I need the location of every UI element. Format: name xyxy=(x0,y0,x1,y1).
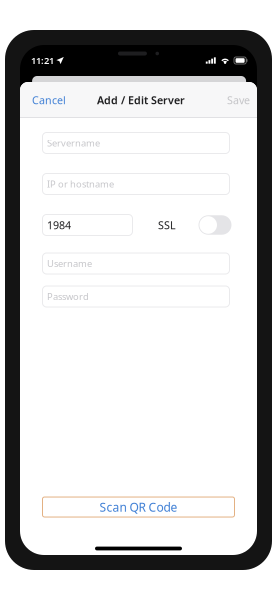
staticText: Save xyxy=(227,93,250,107)
staticText: Password xyxy=(47,290,89,303)
button[interactable]: Cancel xyxy=(20,82,78,118)
button[interactable]: SSL xyxy=(198,215,231,235)
staticText: Servername xyxy=(47,137,100,149)
staticText: Scan QR Code xyxy=(99,499,177,515)
staticText: 11:21 xyxy=(31,54,54,67)
button[interactable]: Save xyxy=(215,82,257,118)
staticText: 1984 xyxy=(47,218,71,232)
staticText: Cancel xyxy=(32,93,66,107)
staticText: SSL xyxy=(158,218,176,232)
staticText: IP or hostname xyxy=(47,178,114,190)
staticText: Username xyxy=(47,257,92,270)
staticText: Add / Edit Server xyxy=(97,93,185,107)
button[interactable]: Scan QR Code xyxy=(42,497,234,517)
